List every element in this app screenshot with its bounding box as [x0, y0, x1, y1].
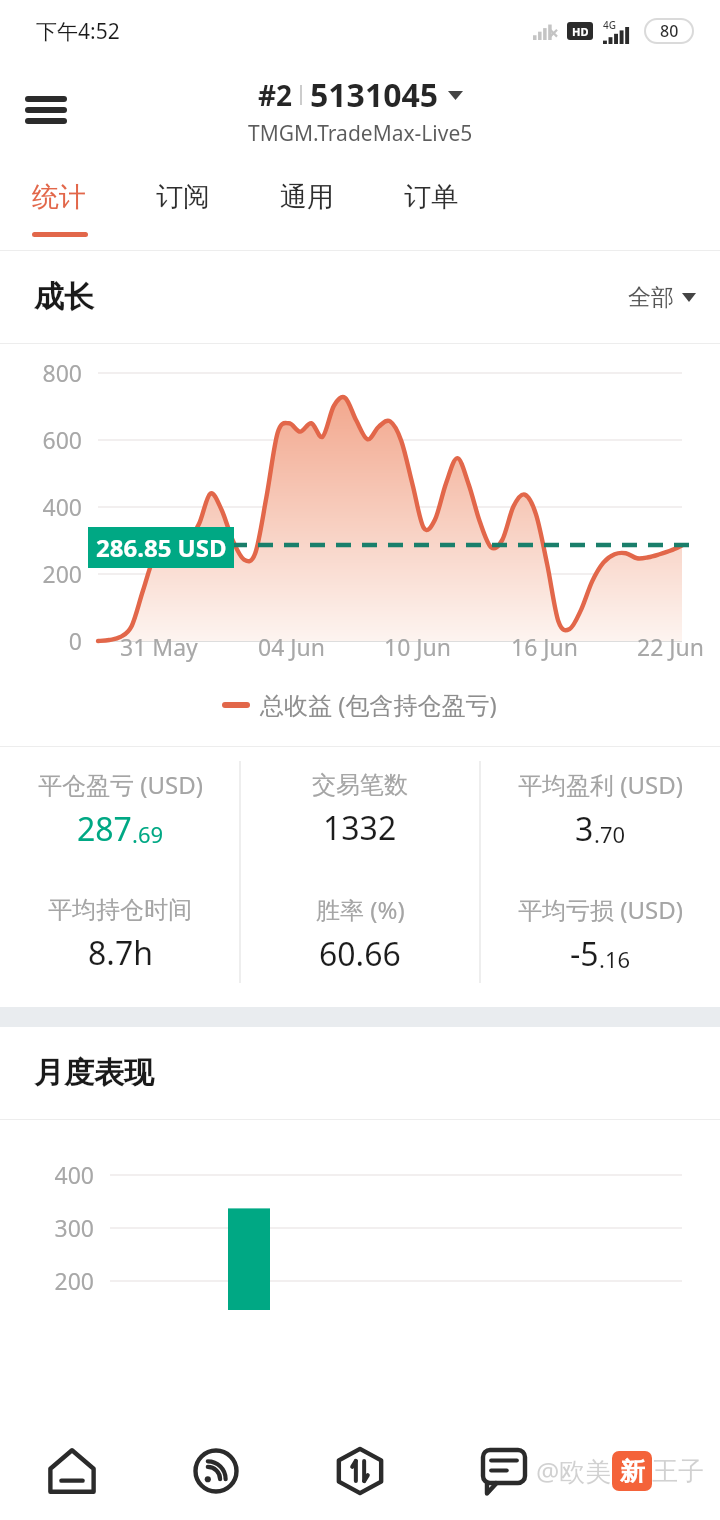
button[interactable]: Menu [14, 78, 78, 142]
staticText: 平仓盈亏 (USD) [38, 768, 203, 801]
staticText: 600 [0, 424, 82, 455]
button[interactable]: 全部 [628, 283, 696, 312]
button[interactable]: 平均盈利 (USD) [480, 747, 720, 872]
staticText: .69 [132, 819, 164, 849]
staticText: 300 [0, 1212, 94, 1243]
staticText: 平均持仓时间 [48, 895, 192, 925]
button[interactable]: 交易笔数 [240, 747, 480, 872]
button[interactable]: 胜率 (%) [240, 872, 480, 997]
staticText: #2 [258, 76, 293, 114]
staticText: 统计 [32, 180, 86, 214]
staticText: 286.85 USD [96, 531, 227, 564]
staticText: 200 [0, 558, 82, 589]
button[interactable]: 统计 [32, 158, 156, 250]
staticText: 16 Jun [511, 631, 578, 662]
button[interactable]: 通用 [280, 158, 404, 250]
staticText: 400 [0, 491, 82, 522]
staticText: 订单 [404, 180, 458, 214]
staticText: 80 [660, 20, 679, 42]
staticText: 5131045 [310, 73, 439, 117]
button[interactable]: 订阅 [156, 158, 280, 250]
staticText: 3 [575, 807, 594, 851]
staticText: 总收益 (包含持仓盈亏) [260, 688, 497, 721]
staticText: 全部 [628, 283, 674, 312]
staticText: 8.7h [88, 931, 153, 975]
staticText: 下午4:52 [36, 17, 120, 46]
staticText: 287 [77, 807, 132, 851]
staticText: -5 [570, 932, 599, 976]
staticText: 王子 [652, 1455, 704, 1488]
staticText: 4G [603, 18, 616, 32]
staticText: 60.66 [319, 932, 401, 976]
staticText: 新 [620, 1456, 645, 1487]
staticText: 0 [0, 625, 82, 656]
staticText: .16 [599, 944, 631, 974]
staticText: 31 May [120, 631, 198, 662]
button[interactable]: 订单 [404, 158, 528, 250]
staticText: HD [572, 24, 589, 39]
staticText: 200 [0, 1265, 94, 1296]
staticText: .70 [594, 819, 626, 849]
staticText: 月度表现 [34, 1054, 154, 1092]
button[interactable]: Trade [288, 1422, 432, 1520]
staticText: 800 [0, 357, 82, 388]
staticText: 22 Jun [637, 631, 704, 662]
staticText: @欧美 [536, 1453, 612, 1489]
button[interactable]: 平均持仓时间 [0, 872, 240, 997]
staticText: 通用 [280, 180, 334, 214]
staticText: 10 Jun [384, 631, 451, 662]
staticText: 平均亏损 (USD) [518, 893, 683, 926]
staticText: 平均盈利 (USD) [518, 768, 683, 801]
button[interactable]: #2 [248, 73, 473, 148]
staticText: 1332 [323, 806, 397, 850]
staticText: 订阅 [156, 180, 210, 214]
button[interactable]: Messages [432, 1422, 576, 1520]
staticText: 成长 [34, 278, 94, 316]
button[interactable]: Signals [144, 1422, 288, 1520]
staticText: 交易笔数 [312, 770, 408, 800]
button[interactable]: 平仓盈亏 (USD) [0, 747, 240, 872]
staticText: 04 Jun [258, 631, 325, 662]
staticText: 400 [0, 1159, 94, 1190]
staticText: TMGM.TradeMax-Live5 [248, 119, 473, 148]
staticText: 胜率 (%) [316, 893, 405, 926]
button[interactable]: Home [0, 1422, 144, 1520]
button[interactable]: 平均亏损 (USD) [480, 872, 720, 997]
